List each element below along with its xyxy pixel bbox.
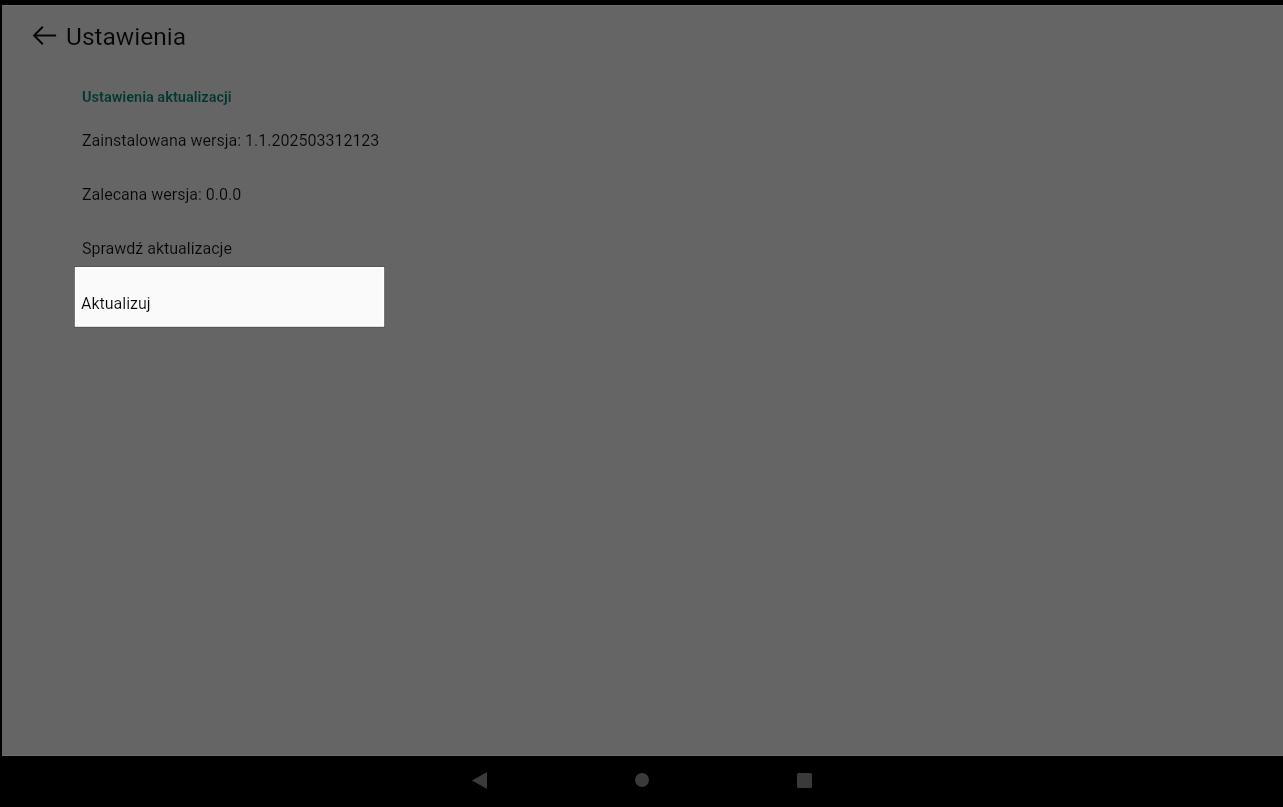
staticText: Ustawienia aktualizacji <box>82 89 232 106</box>
button[interactable]: Recent apps <box>780 756 828 804</box>
staticText: Ustawienia <box>66 22 187 51</box>
staticText: Zainstalowana wersja: 1.1.202503312123 <box>82 131 380 150</box>
staticText: Zalecana wersja: 0.0.0 <box>82 185 242 204</box>
button[interactable]: Back <box>27 17 63 53</box>
button[interactable]: Aktualizuj <box>74 265 385 328</box>
button[interactable]: Home <box>618 756 666 804</box>
staticText: Sprawdź aktualizacje <box>82 239 232 258</box>
button[interactable]: Back <box>455 756 503 804</box>
staticText: Aktualizuj <box>81 294 151 313</box>
